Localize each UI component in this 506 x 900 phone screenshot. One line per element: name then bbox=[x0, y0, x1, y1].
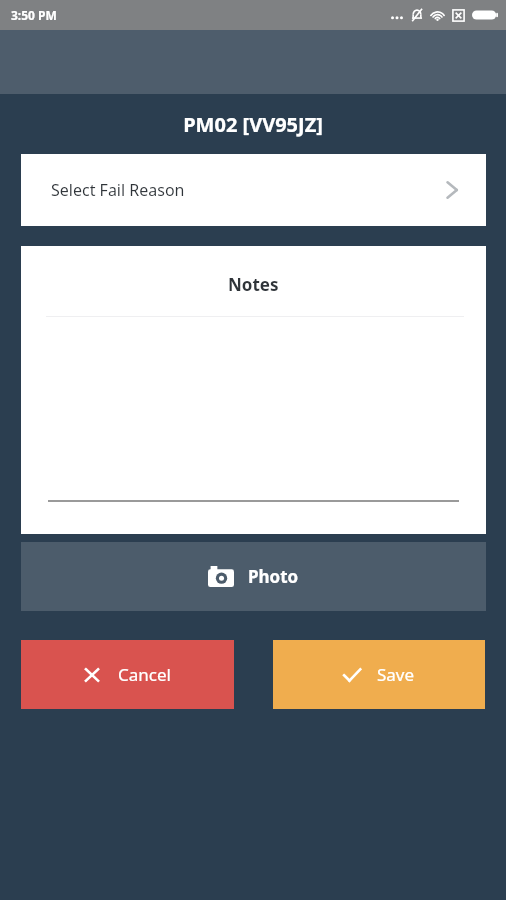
other: Take photo bbox=[208, 566, 234, 587]
staticText: PM02 [VV95JZ] bbox=[183, 111, 323, 138]
staticText: Cancel bbox=[118, 663, 171, 686]
button[interactable]: Save bbox=[273, 640, 485, 709]
staticText: Save bbox=[377, 663, 415, 686]
button[interactable]: Select Fail Reason bbox=[21, 154, 486, 226]
staticText: 3:50 PM bbox=[11, 7, 57, 23]
button[interactable]: Take photo bbox=[21, 542, 486, 611]
button[interactable]: Cancel bbox=[21, 640, 234, 709]
button[interactable]: Notes bbox=[21, 246, 486, 534]
staticText: Photo bbox=[248, 565, 299, 588]
staticText: Notes bbox=[228, 273, 279, 296]
staticText: Select Fail Reason bbox=[51, 179, 185, 201]
